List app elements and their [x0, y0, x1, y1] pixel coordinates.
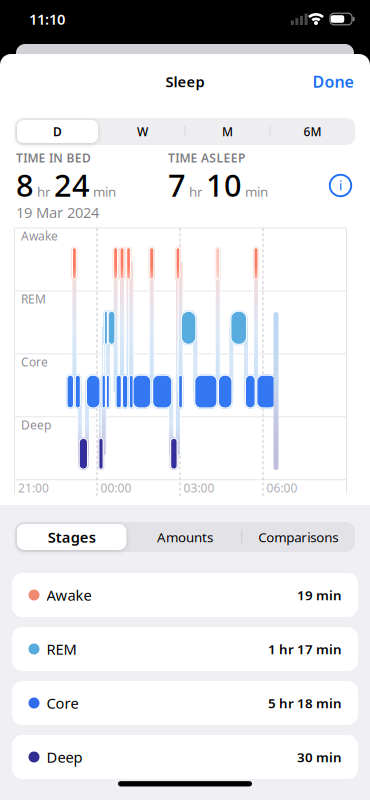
button[interactable]: Done — [312, 71, 353, 92]
staticText: REM — [21, 291, 46, 307]
button[interactable]: Deep — [12, 735, 358, 779]
staticText: min — [93, 183, 116, 200]
staticText: Deep — [21, 417, 51, 433]
staticText: 1 hr 17 min — [268, 640, 342, 658]
staticText: min — [245, 183, 268, 200]
button[interactable]: Comparisons — [244, 524, 353, 550]
staticText: 19 min — [297, 586, 342, 604]
staticText: Awake — [46, 585, 91, 605]
staticText: TIME IN BED — [16, 150, 91, 166]
button[interactable]: Amounts — [130, 524, 239, 550]
button[interactable]: W — [102, 120, 182, 143]
staticText: M — [222, 123, 233, 139]
staticText: 06:00 — [266, 480, 297, 496]
staticText: hr — [189, 183, 203, 200]
staticText: 5 hr 18 min — [268, 694, 342, 712]
button[interactable]: Awake — [12, 573, 358, 617]
staticText: 6M — [303, 123, 321, 139]
staticText: Comparisons — [258, 528, 338, 546]
staticText: REM — [46, 639, 76, 659]
staticText: 8 — [16, 164, 34, 205]
staticText: 11:10 — [29, 9, 65, 29]
staticText: D — [53, 123, 62, 139]
staticText: Core — [21, 354, 48, 370]
staticText: Deep — [46, 747, 82, 767]
staticText: Amounts — [157, 528, 213, 546]
staticText: 30 min — [297, 748, 342, 766]
button[interactable]: Core — [12, 681, 358, 725]
staticText: Done — [312, 71, 353, 92]
staticText: Stages — [48, 527, 96, 547]
button[interactable]: D — [17, 120, 98, 143]
staticText: 24 — [54, 164, 90, 205]
button[interactable]: REM — [12, 627, 358, 671]
button[interactable]: M — [187, 120, 267, 143]
staticText: W — [137, 123, 148, 139]
staticText: hr — [37, 183, 51, 200]
button[interactable]: About Sleep — [327, 172, 353, 198]
staticText: Sleep — [165, 72, 204, 91]
staticText: 03:00 — [183, 480, 214, 496]
staticText: 19 Mar 2024 — [16, 202, 99, 222]
staticText: Core — [46, 693, 78, 713]
staticText: 21:00 — [18, 480, 49, 496]
staticText: TIME ASLEEP — [168, 150, 245, 166]
staticText: 7 — [168, 164, 186, 205]
staticText: 10 — [206, 164, 242, 205]
staticText: 00:00 — [100, 480, 131, 496]
button[interactable]: 6M — [272, 120, 352, 143]
staticText: i — [339, 177, 342, 193]
staticText: Awake — [21, 228, 58, 244]
button[interactable]: Stages — [17, 524, 126, 550]
